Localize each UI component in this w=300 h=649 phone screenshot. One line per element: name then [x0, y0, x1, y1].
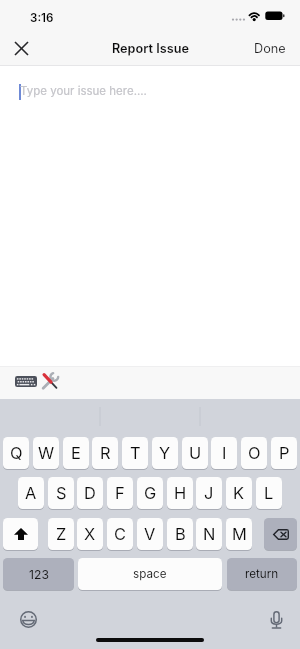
button[interactable]: Done	[248, 31, 292, 65]
staticText: J	[204, 483, 214, 503]
staticText: P	[279, 443, 290, 463]
button[interactable]: E	[63, 437, 89, 469]
button[interactable]: Backspace	[264, 518, 297, 550]
button[interactable]: A	[18, 477, 44, 509]
staticText: K	[233, 483, 245, 503]
button[interactable]: Shift	[3, 518, 38, 550]
button[interactable]: V	[137, 518, 163, 550]
staticText: Y	[159, 443, 171, 463]
staticText: M	[232, 524, 247, 544]
button[interactable]: B	[167, 518, 193, 550]
button[interactable]: R	[92, 437, 118, 469]
staticText: W	[38, 443, 55, 463]
staticText: Type your issue here....	[20, 84, 147, 98]
button[interactable]: D	[77, 477, 103, 509]
staticText: S	[56, 483, 67, 503]
button[interactable]: P	[271, 437, 297, 469]
staticText: R	[100, 443, 111, 463]
button[interactable]: K	[226, 477, 252, 509]
button[interactable]: Keyboard	[15, 376, 37, 387]
staticText: U	[189, 443, 202, 463]
staticText: N	[203, 524, 216, 544]
button[interactable]: Tools	[41, 372, 59, 390]
staticText: Done	[254, 41, 286, 56]
staticText: 3:16	[30, 11, 54, 25]
button[interactable]: L	[256, 477, 282, 509]
button[interactable]: S	[48, 477, 74, 509]
button[interactable]: Dictation	[262, 606, 291, 634]
button[interactable]: Q	[3, 437, 29, 469]
button[interactable]: M	[226, 518, 252, 550]
button[interactable]: U	[182, 437, 208, 469]
button[interactable]: F	[107, 477, 133, 509]
staticText: F	[115, 483, 125, 503]
staticText: L	[264, 483, 274, 503]
staticText: Q	[10, 443, 23, 463]
button[interactable]: H	[167, 477, 193, 509]
staticText: X	[84, 524, 96, 544]
button[interactable]: Type your issue here....	[20, 81, 220, 101]
staticText: 123	[29, 567, 49, 582]
staticText: I	[222, 443, 227, 463]
staticText: Report Issue	[112, 41, 189, 56]
staticText: Z	[56, 524, 67, 544]
staticText: return	[245, 567, 279, 581]
staticText: G	[144, 483, 157, 503]
button[interactable]: C	[107, 518, 133, 550]
button[interactable]: return	[227, 558, 297, 590]
staticText: T	[130, 443, 141, 463]
button[interactable]: I	[211, 437, 237, 469]
staticText: space	[133, 567, 167, 581]
button[interactable]: Y	[152, 437, 178, 469]
staticText: E	[71, 443, 81, 463]
button[interactable]: G	[137, 477, 163, 509]
staticText: V	[144, 524, 156, 544]
staticText: O	[248, 443, 261, 463]
button[interactable]: 123	[3, 558, 74, 590]
staticText: C	[114, 524, 126, 544]
staticText: B	[175, 524, 186, 544]
button[interactable]: Close	[0, 31, 42, 65]
button[interactable]: X	[77, 518, 103, 550]
button[interactable]: N	[196, 518, 222, 550]
staticText: D	[84, 483, 96, 503]
button[interactable]: T	[122, 437, 148, 469]
button[interactable]: W	[33, 437, 59, 469]
staticText: H	[174, 483, 187, 503]
button[interactable]: Emoji	[14, 605, 43, 633]
staticText: A	[25, 483, 37, 503]
button[interactable]: space	[78, 558, 222, 590]
button[interactable]: J	[196, 477, 222, 509]
button[interactable]: O	[241, 437, 267, 469]
button[interactable]: Z	[48, 518, 74, 550]
